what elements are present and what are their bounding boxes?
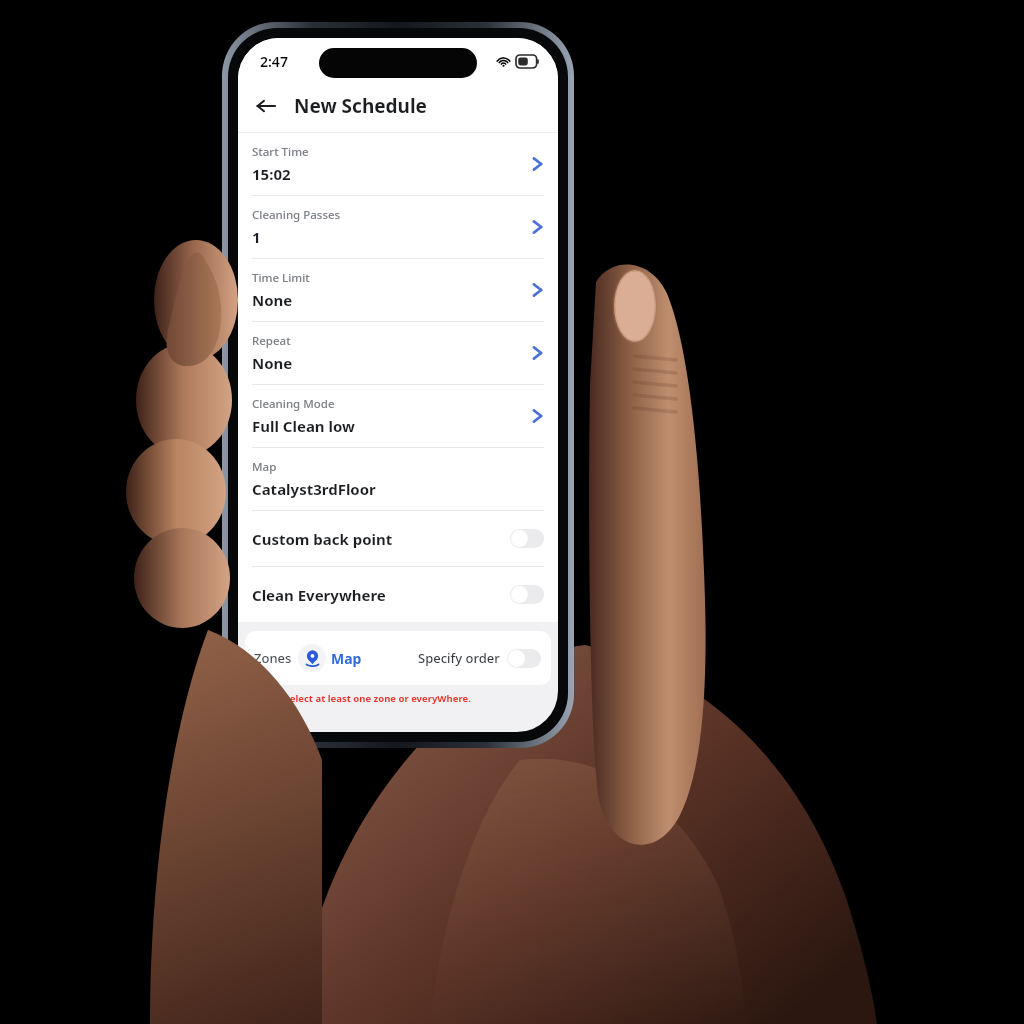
staticText: Time Limit	[252, 270, 310, 286]
button[interactable]: Back	[246, 86, 286, 126]
button[interactable]: Custom back point	[238, 511, 558, 566]
staticText: Start Time	[252, 144, 309, 160]
button[interactable]: Toggle	[510, 529, 544, 548]
button[interactable]: Toggle	[507, 649, 541, 668]
button[interactable]: Toggle	[510, 585, 544, 604]
button[interactable]: Clean Everywhere	[238, 567, 558, 622]
staticText: Full Clean low	[252, 416, 355, 436]
button[interactable]: Cleaning Passes	[238, 196, 558, 258]
button[interactable]: Cleaning Mode	[238, 385, 558, 447]
button[interactable]: Repeat	[238, 322, 558, 384]
button[interactable]: Start Time	[238, 133, 558, 195]
staticText: Zones	[254, 649, 292, 667]
staticText: None	[252, 353, 293, 373]
staticText: Repeat	[252, 333, 291, 349]
staticText: Custom back point	[252, 529, 510, 549]
button[interactable]: Time Limit	[238, 259, 558, 321]
staticText: Clean Everywhere	[252, 585, 510, 605]
staticText: Map	[331, 649, 362, 668]
staticText: None	[252, 290, 293, 310]
staticText: Cleaning Passes	[252, 207, 341, 223]
staticText: Map	[252, 459, 277, 475]
staticText: Please select at least one zone or every…	[252, 692, 471, 705]
staticText: Specify order	[418, 649, 500, 667]
staticText: Cleaning Mode	[252, 396, 335, 412]
staticText: 1	[252, 227, 261, 247]
staticText: 15:02	[252, 164, 291, 184]
staticText: 2:47	[260, 52, 288, 71]
button[interactable]: Map	[238, 448, 558, 510]
staticText: Catalyst3rdFloor	[252, 479, 376, 499]
staticText: New Schedule	[294, 93, 427, 119]
button[interactable]: Map	[298, 644, 362, 672]
